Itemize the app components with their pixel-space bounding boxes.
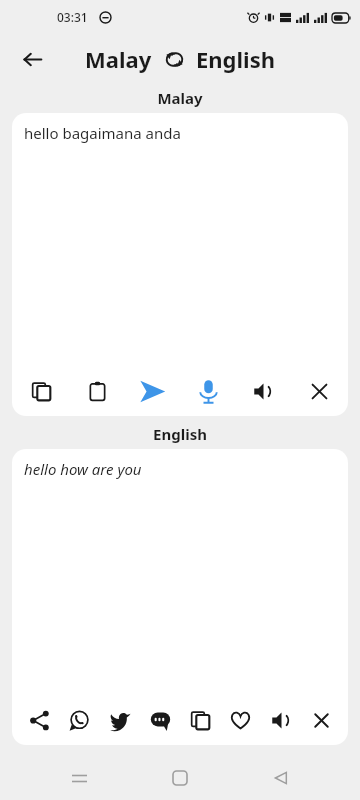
button[interactable]: Voice input [189, 372, 227, 410]
button[interactable]: Share [20, 701, 58, 739]
button[interactable]: Copy [22, 372, 60, 410]
staticText: hello how are you [24, 459, 142, 479]
button[interactable]: WhatsApp [60, 701, 98, 739]
button[interactable]: Copy [181, 701, 219, 739]
button[interactable]: Back [10, 37, 54, 81]
button[interactable]: Recents [57, 756, 101, 800]
button[interactable]: Clear [300, 372, 338, 410]
button[interactable]: Back [259, 756, 303, 800]
staticText: English [153, 424, 207, 444]
button[interactable]: SMS [141, 701, 179, 739]
button[interactable]: Clear [302, 701, 340, 739]
button[interactable]: Twitter [101, 701, 139, 739]
button[interactable]: Malay [85, 44, 152, 74]
button[interactable]: English [196, 44, 276, 74]
button[interactable]: Speak [262, 701, 300, 739]
button[interactable]: Favourite [221, 701, 259, 739]
button[interactable]: Paste [78, 372, 116, 410]
button[interactable]: Swap languages [159, 44, 189, 74]
staticText: 03:31 [57, 9, 88, 25]
staticText: Malay [157, 88, 203, 108]
button[interactable]: Speak [244, 372, 282, 410]
button[interactable]: Home [158, 756, 202, 800]
staticText: hello bagaimana anda [24, 123, 181, 143]
button[interactable]: Send [133, 372, 171, 410]
